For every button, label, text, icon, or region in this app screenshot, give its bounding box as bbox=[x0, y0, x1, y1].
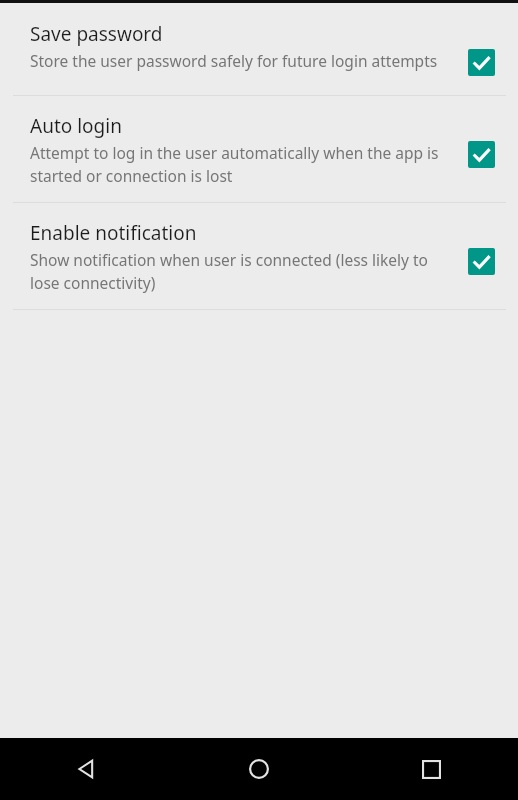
button[interactable]: Home bbox=[172, 738, 345, 800]
staticText: Save password bbox=[30, 22, 163, 46]
staticText: Auto login bbox=[30, 114, 122, 138]
staticText: Show notification when user is connected… bbox=[30, 248, 448, 294]
button[interactable]: Toggle Save password bbox=[462, 43, 500, 81]
staticText: Attempt to log in the user automatically… bbox=[30, 141, 448, 187]
staticText: Enable notification bbox=[30, 221, 197, 245]
button[interactable]: Back bbox=[0, 738, 172, 800]
button[interactable]: Auto login bbox=[0, 96, 518, 202]
button[interactable]: Toggle Auto login bbox=[462, 135, 500, 173]
button[interactable]: Save password bbox=[0, 3, 518, 95]
staticText: Store the user password safely for futur… bbox=[30, 49, 438, 72]
button[interactable]: Toggle Enable notification bbox=[462, 242, 500, 280]
button[interactable]: Enable notification bbox=[0, 203, 518, 309]
button[interactable]: Recent apps bbox=[345, 738, 518, 800]
